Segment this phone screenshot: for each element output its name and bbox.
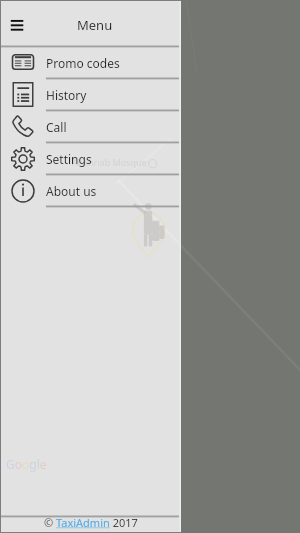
staticText: Settings <box>46 151 92 167</box>
button[interactable]: Call <box>0 111 181 142</box>
staticText: © TaxiAdmin 2017 <box>44 515 138 530</box>
button[interactable]: Open navigation menu <box>0 8 34 38</box>
staticText: About us <box>46 183 97 199</box>
button[interactable]: About us <box>0 175 181 206</box>
staticText: Promo codes <box>46 55 120 71</box>
button[interactable]: Promo codes <box>0 47 181 78</box>
staticText: History <box>46 87 87 103</box>
button[interactable]: History <box>0 79 181 110</box>
button[interactable]: Settings <box>0 143 181 174</box>
staticText: Al Khriab Mosque <box>72 156 147 168</box>
staticText: Google <box>6 456 47 472</box>
staticText: Call <box>46 119 67 135</box>
staticText: Menu <box>77 16 113 34</box>
